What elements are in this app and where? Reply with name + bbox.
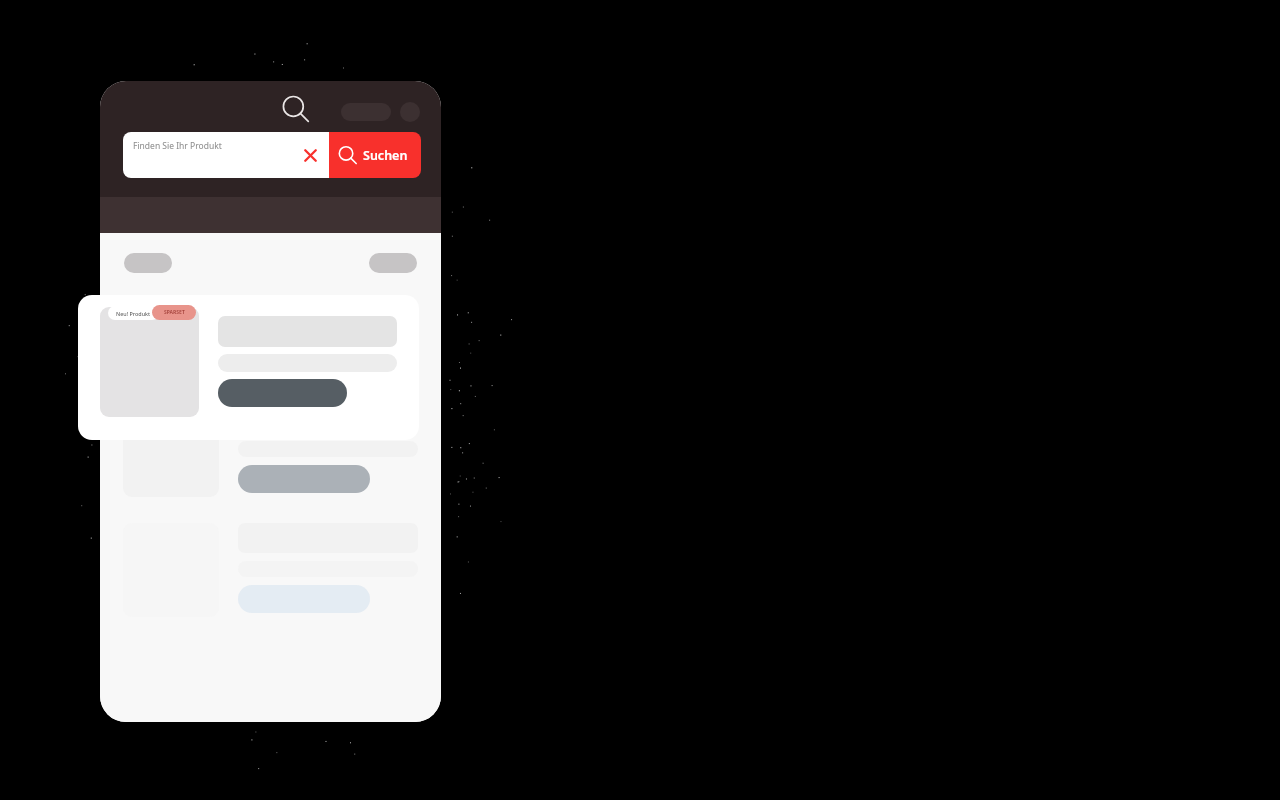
- button[interactable]: Add to cart: [238, 585, 370, 613]
- button[interactable]: Add to cart: [123, 403, 423, 503]
- staticText: SPARSET: [164, 309, 185, 316]
- button[interactable]: Suchen: [329, 132, 421, 178]
- button[interactable]: Add to cart: [123, 523, 423, 623]
- button[interactable]: Add to cart: [218, 379, 347, 407]
- button[interactable]: Menu: [341, 103, 391, 121]
- button[interactable]: Filter: [124, 253, 172, 273]
- button[interactable]: Neu! Produkt: [78, 295, 419, 440]
- button[interactable]: Search: [280, 94, 311, 125]
- button[interactable]: Clear: [300, 145, 321, 166]
- staticText: Neu! Produkt: [116, 310, 151, 317]
- staticText: Suchen: [363, 147, 408, 164]
- button[interactable]: Add to cart: [238, 465, 370, 493]
- button[interactable]: Finden Sie Ihr Produkt: [123, 132, 329, 178]
- button[interactable]: Account: [400, 102, 420, 122]
- staticText: Finden Sie Ihr Produkt: [133, 140, 222, 152]
- button[interactable]: Sort: [369, 253, 417, 273]
